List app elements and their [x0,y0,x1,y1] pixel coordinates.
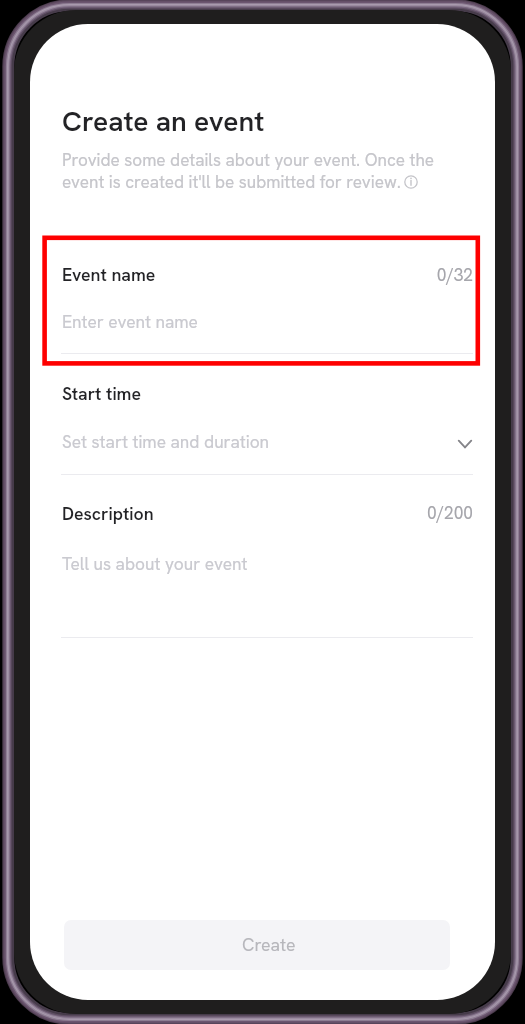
staticText: Enter event name [62,311,198,334]
button[interactable]: More information [400,171,422,193]
staticText: 0/32 [30,264,473,1000]
staticText: Start time [62,382,142,405]
staticText: Set start time and duration [62,431,270,454]
staticText: event is created it'll be submitted for … [62,171,401,193]
staticText: Create [242,933,296,956]
staticText: Provide some details about your event. O… [62,149,435,171]
staticText: Description [62,502,154,525]
staticText: 0/200 [30,502,473,1000]
button[interactable]: Open time picker [452,431,478,457]
staticText: Create an event [62,103,265,140]
staticText: Tell us about your event [62,553,248,576]
button[interactable]: Create [64,920,450,970]
staticText: Event name [62,263,156,286]
